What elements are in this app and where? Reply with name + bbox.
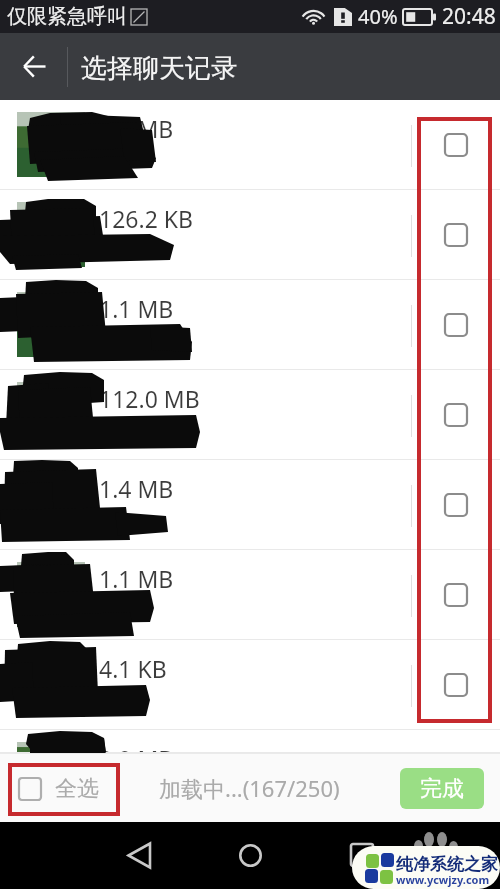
staticText: 2.0 MB [99, 743, 174, 766]
button[interactable]: 126.2 KB [0, 190, 500, 280]
staticText: 2.0 MB [99, 113, 174, 144]
staticText: 仅限紧急呼叫 [7, 4, 127, 29]
staticText: 纯净系统之家 [396, 854, 498, 875]
button[interactable]: 1.1 MB [0, 550, 500, 640]
staticText: 4.1 KB [99, 653, 167, 684]
staticText: 1.4 MB [99, 473, 174, 504]
staticText: 40% [358, 3, 398, 30]
button[interactable]: 1.1 MB [0, 280, 500, 370]
button[interactable]: 4.1 KB [0, 640, 500, 730]
button[interactable]: 返回 [6, 33, 62, 100]
staticText: 20:48 [442, 2, 496, 31]
button[interactable]: 选择此项 [445, 314, 467, 336]
button[interactable]: 选择此项 [445, 674, 467, 696]
button[interactable]: 选择此项 [445, 134, 467, 156]
button[interactable]: 最近任务 [337, 830, 387, 880]
button[interactable]: 选择此项 [445, 494, 467, 516]
staticText: 选择聊天记录 [81, 52, 237, 85]
staticText: 全选 [55, 775, 99, 803]
staticText: www.ycwjzy.com [396, 872, 490, 887]
staticText: 完成 [420, 775, 464, 803]
button[interactable]: 112.0 MB [0, 370, 500, 460]
button[interactable]: 选择此项 [445, 764, 467, 786]
button[interactable]: 1.4 MB [0, 460, 500, 550]
button[interactable]: 主屏幕 [225, 830, 275, 880]
staticText: 加载中...(167/250) [159, 773, 340, 803]
button[interactable]: 2.0 MB [0, 730, 500, 753]
button[interactable]: 选择此项 [445, 584, 467, 606]
button[interactable]: 全选 [19, 775, 99, 803]
button[interactable]: 完成 [400, 768, 484, 809]
button[interactable]: 2.0 MB [0, 100, 500, 190]
button[interactable]: 选择此项 [445, 404, 467, 426]
button[interactable]: 返回 [114, 830, 164, 880]
button[interactable]: 选择此项 [445, 224, 467, 246]
staticText: 112.0 MB [99, 383, 200, 414]
staticText: 1.1 MB [99, 293, 174, 324]
staticText: 1.1 MB [99, 563, 174, 594]
staticText: 126.2 KB [99, 203, 193, 234]
